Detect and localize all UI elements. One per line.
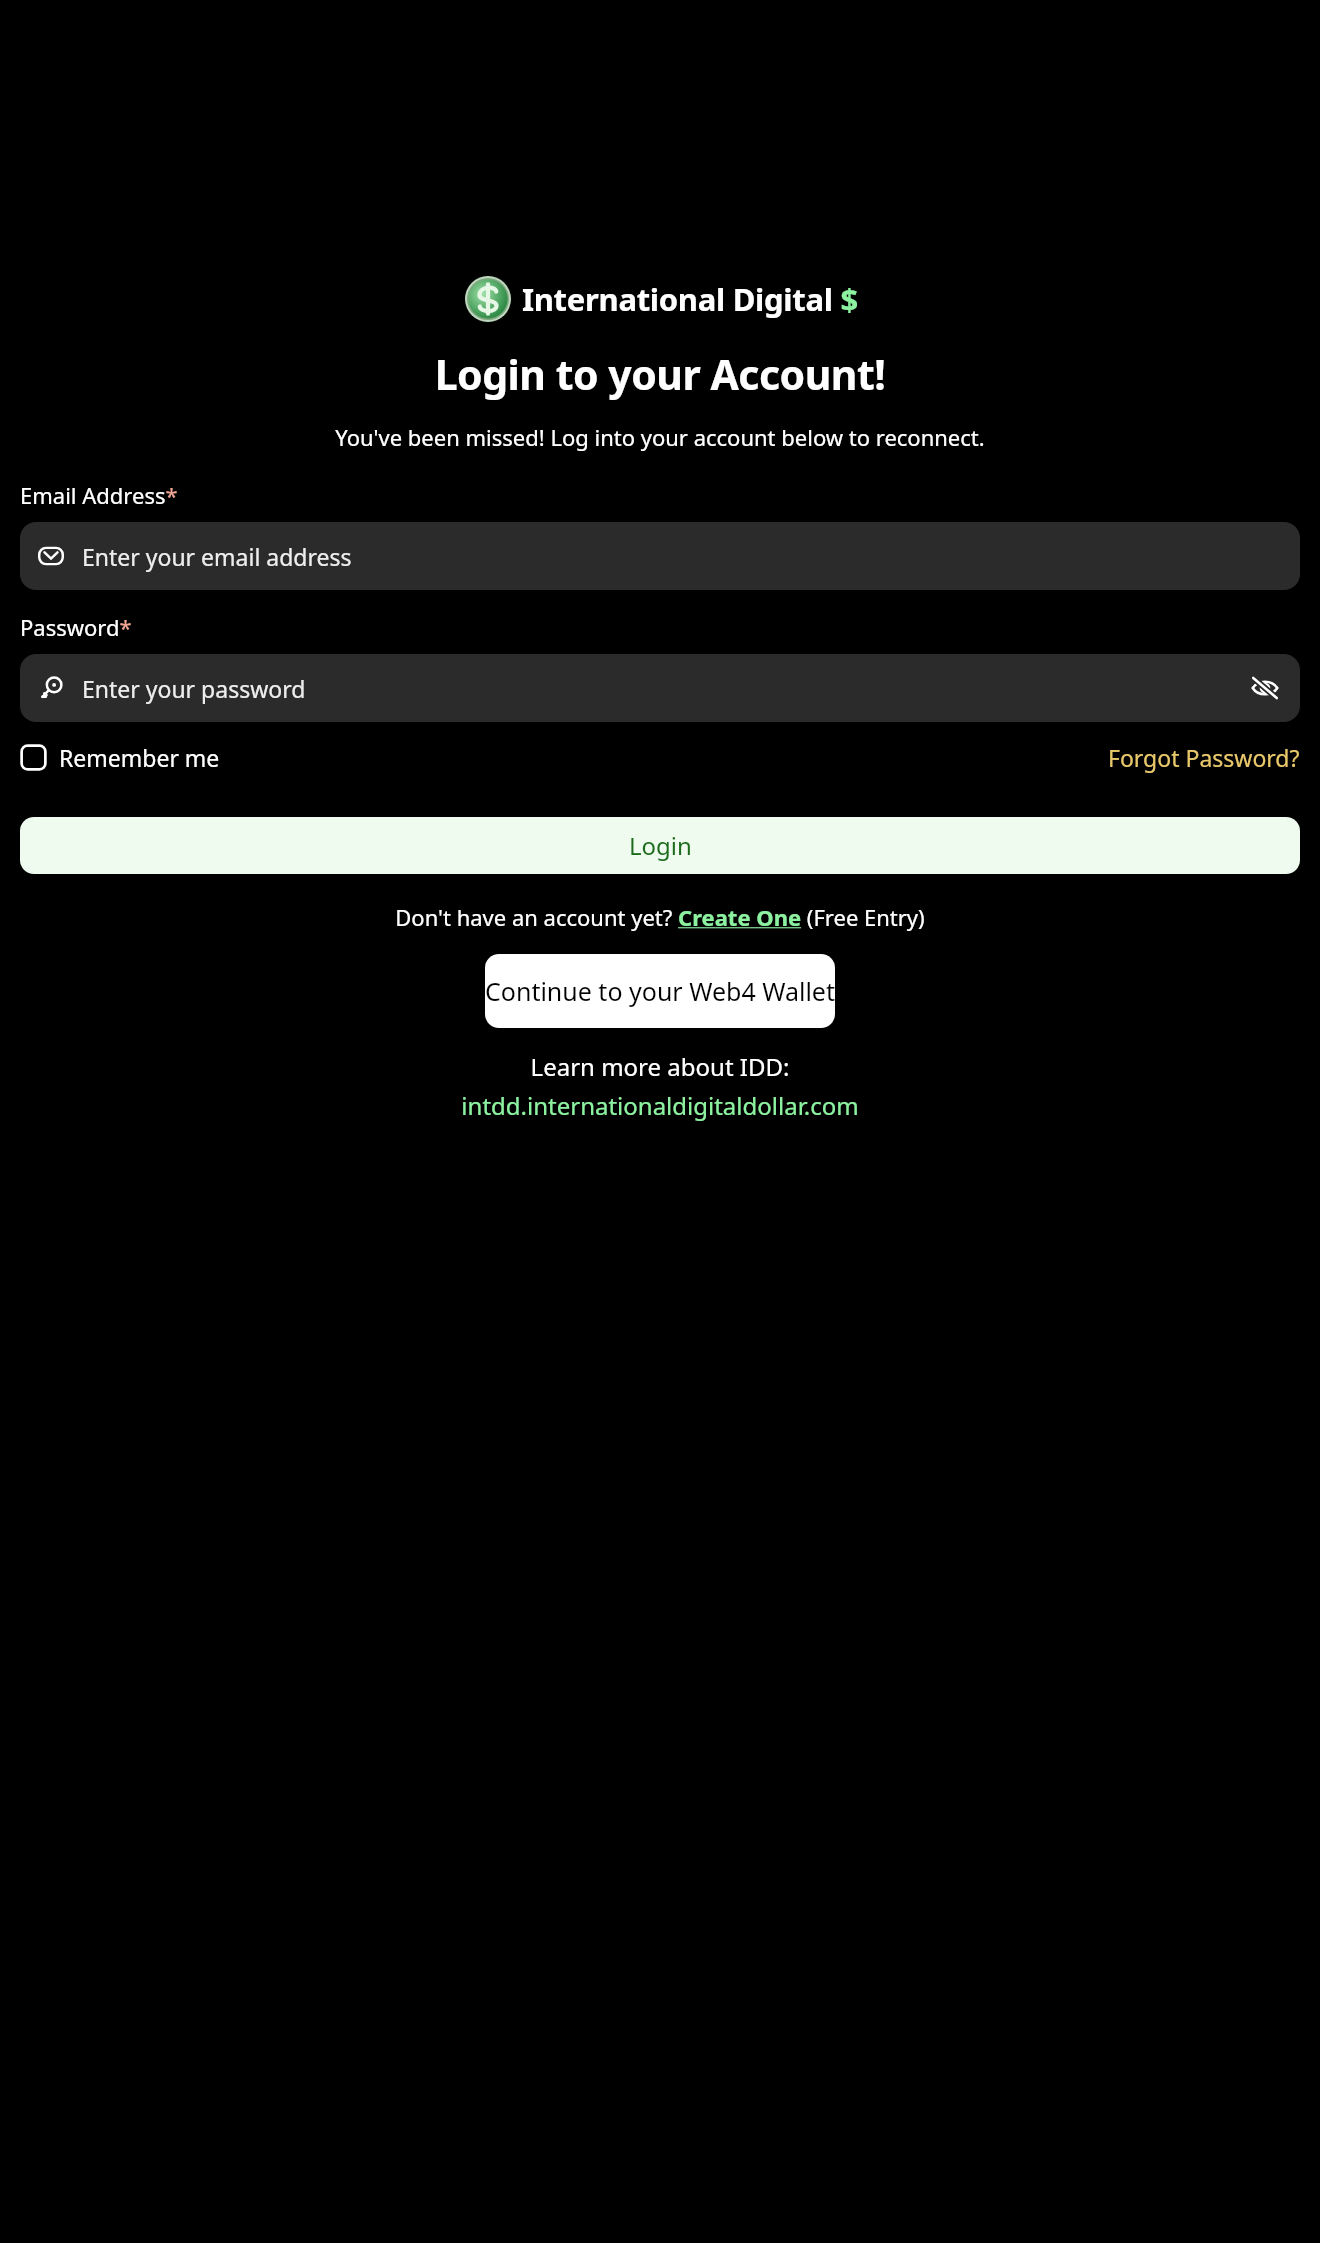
staticText: Email Address* xyxy=(20,480,178,510)
other: International Digital Dollar logo xyxy=(463,274,513,324)
staticText: Login xyxy=(629,829,692,862)
staticText: Continue to your Web4 Wallet xyxy=(485,974,835,1008)
button[interactable]: Forgot Password? xyxy=(1108,738,1300,777)
button[interactable]: Login xyxy=(20,817,1300,874)
button[interactable]: Don't have an account yet? Create One (F… xyxy=(20,902,1300,932)
staticText: Password* xyxy=(20,612,132,642)
staticText: Enter your email address xyxy=(82,541,352,572)
button[interactable]: Enter your password xyxy=(20,654,1300,722)
button[interactable]: Remember me xyxy=(20,738,220,777)
staticText: You've been missed! Log into your accoun… xyxy=(26,422,1294,452)
button[interactable]: Show password xyxy=(1248,671,1282,705)
staticText: intdd.internationaldigitaldollar.com xyxy=(461,1089,859,1122)
button[interactable]: Enter your email address xyxy=(20,522,1300,590)
button[interactable]: intdd.internationaldigitaldollar.com xyxy=(20,1089,1300,1122)
staticText: Login to your Account! xyxy=(20,346,1300,402)
button[interactable]: Continue to your Web4 Wallet xyxy=(485,954,835,1028)
staticText: Enter your password xyxy=(82,673,306,704)
staticText: Forgot Password? xyxy=(1108,742,1300,773)
staticText: Remember me xyxy=(59,742,220,773)
staticText: Don't have an account yet? Create One (F… xyxy=(395,902,925,932)
staticText: International Digital $ xyxy=(522,278,858,320)
staticText: Learn more about IDD: xyxy=(20,1050,1300,1083)
